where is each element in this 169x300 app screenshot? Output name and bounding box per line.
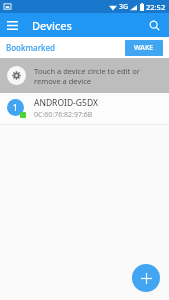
staticText: Devices: [32, 18, 72, 33]
staticText: 3G: [119, 2, 129, 12]
staticText: 22:52: [146, 2, 166, 12]
staticText: ANDROID-G5DX: [34, 97, 98, 109]
button[interactable]: Add device: [132, 264, 160, 292]
button[interactable]: Open navigation menu: [0, 13, 24, 37]
staticText: Bookmarked: [6, 42, 56, 53]
staticText: Touch a device circle to edit or: [34, 66, 140, 76]
button[interactable]: Touch a device circle to edit or: [0, 58, 169, 93]
staticText: 1: [13, 102, 18, 113]
staticText: WAKE: [134, 43, 154, 53]
button[interactable]: Search: [142, 13, 166, 37]
staticText: 0C:60:76:82:97:6B: [34, 110, 93, 120]
button[interactable]: Edit device: [0, 93, 169, 124]
button[interactable]: WAKE: [125, 40, 163, 56]
staticText: remove a device: [34, 76, 91, 86]
button[interactable]: Edit device: [7, 99, 24, 116]
